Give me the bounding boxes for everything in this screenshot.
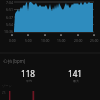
staticText: 平均 <box>26 79 32 83</box>
staticText: 5:00 <box>25 38 32 42</box>
staticText: ゾーン <box>2 84 12 88</box>
button[interactable]: 118 <box>5 68 52 83</box>
staticText: 10:00 <box>41 38 50 42</box>
staticText: 7:04 <box>6 0 13 5</box>
staticText: Z5 <box>2 91 6 95</box>
button[interactable]: 141 <box>52 68 99 83</box>
staticText: 15:00 <box>57 38 66 42</box>
staticText: 心拍 (bpm) <box>3 58 26 64</box>
staticText: 最大 <box>73 79 79 83</box>
staticText: 118 <box>21 68 36 79</box>
staticText: 10:36 <box>4 29 13 34</box>
staticText: 6:51 <box>6 7 13 12</box>
staticText: 6:37 <box>6 15 13 20</box>
staticText: 5:54 <box>6 22 13 27</box>
staticText: 0:00 <box>9 38 16 42</box>
staticText: 25:00 <box>90 38 99 42</box>
staticText: 141 <box>68 68 83 79</box>
staticText: 20:00 <box>74 38 83 42</box>
